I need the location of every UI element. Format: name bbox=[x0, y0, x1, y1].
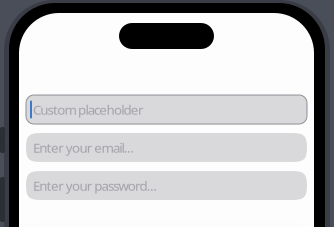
button[interactable]: Custom placeholder bbox=[26, 95, 307, 124]
staticText: Enter your password... bbox=[33, 177, 157, 194]
button[interactable]: Enter your password... bbox=[26, 171, 307, 200]
staticText: Custom placeholder bbox=[33, 101, 144, 118]
staticText: Enter your email... bbox=[33, 139, 134, 156]
button[interactable]: Enter your email... bbox=[26, 133, 307, 162]
